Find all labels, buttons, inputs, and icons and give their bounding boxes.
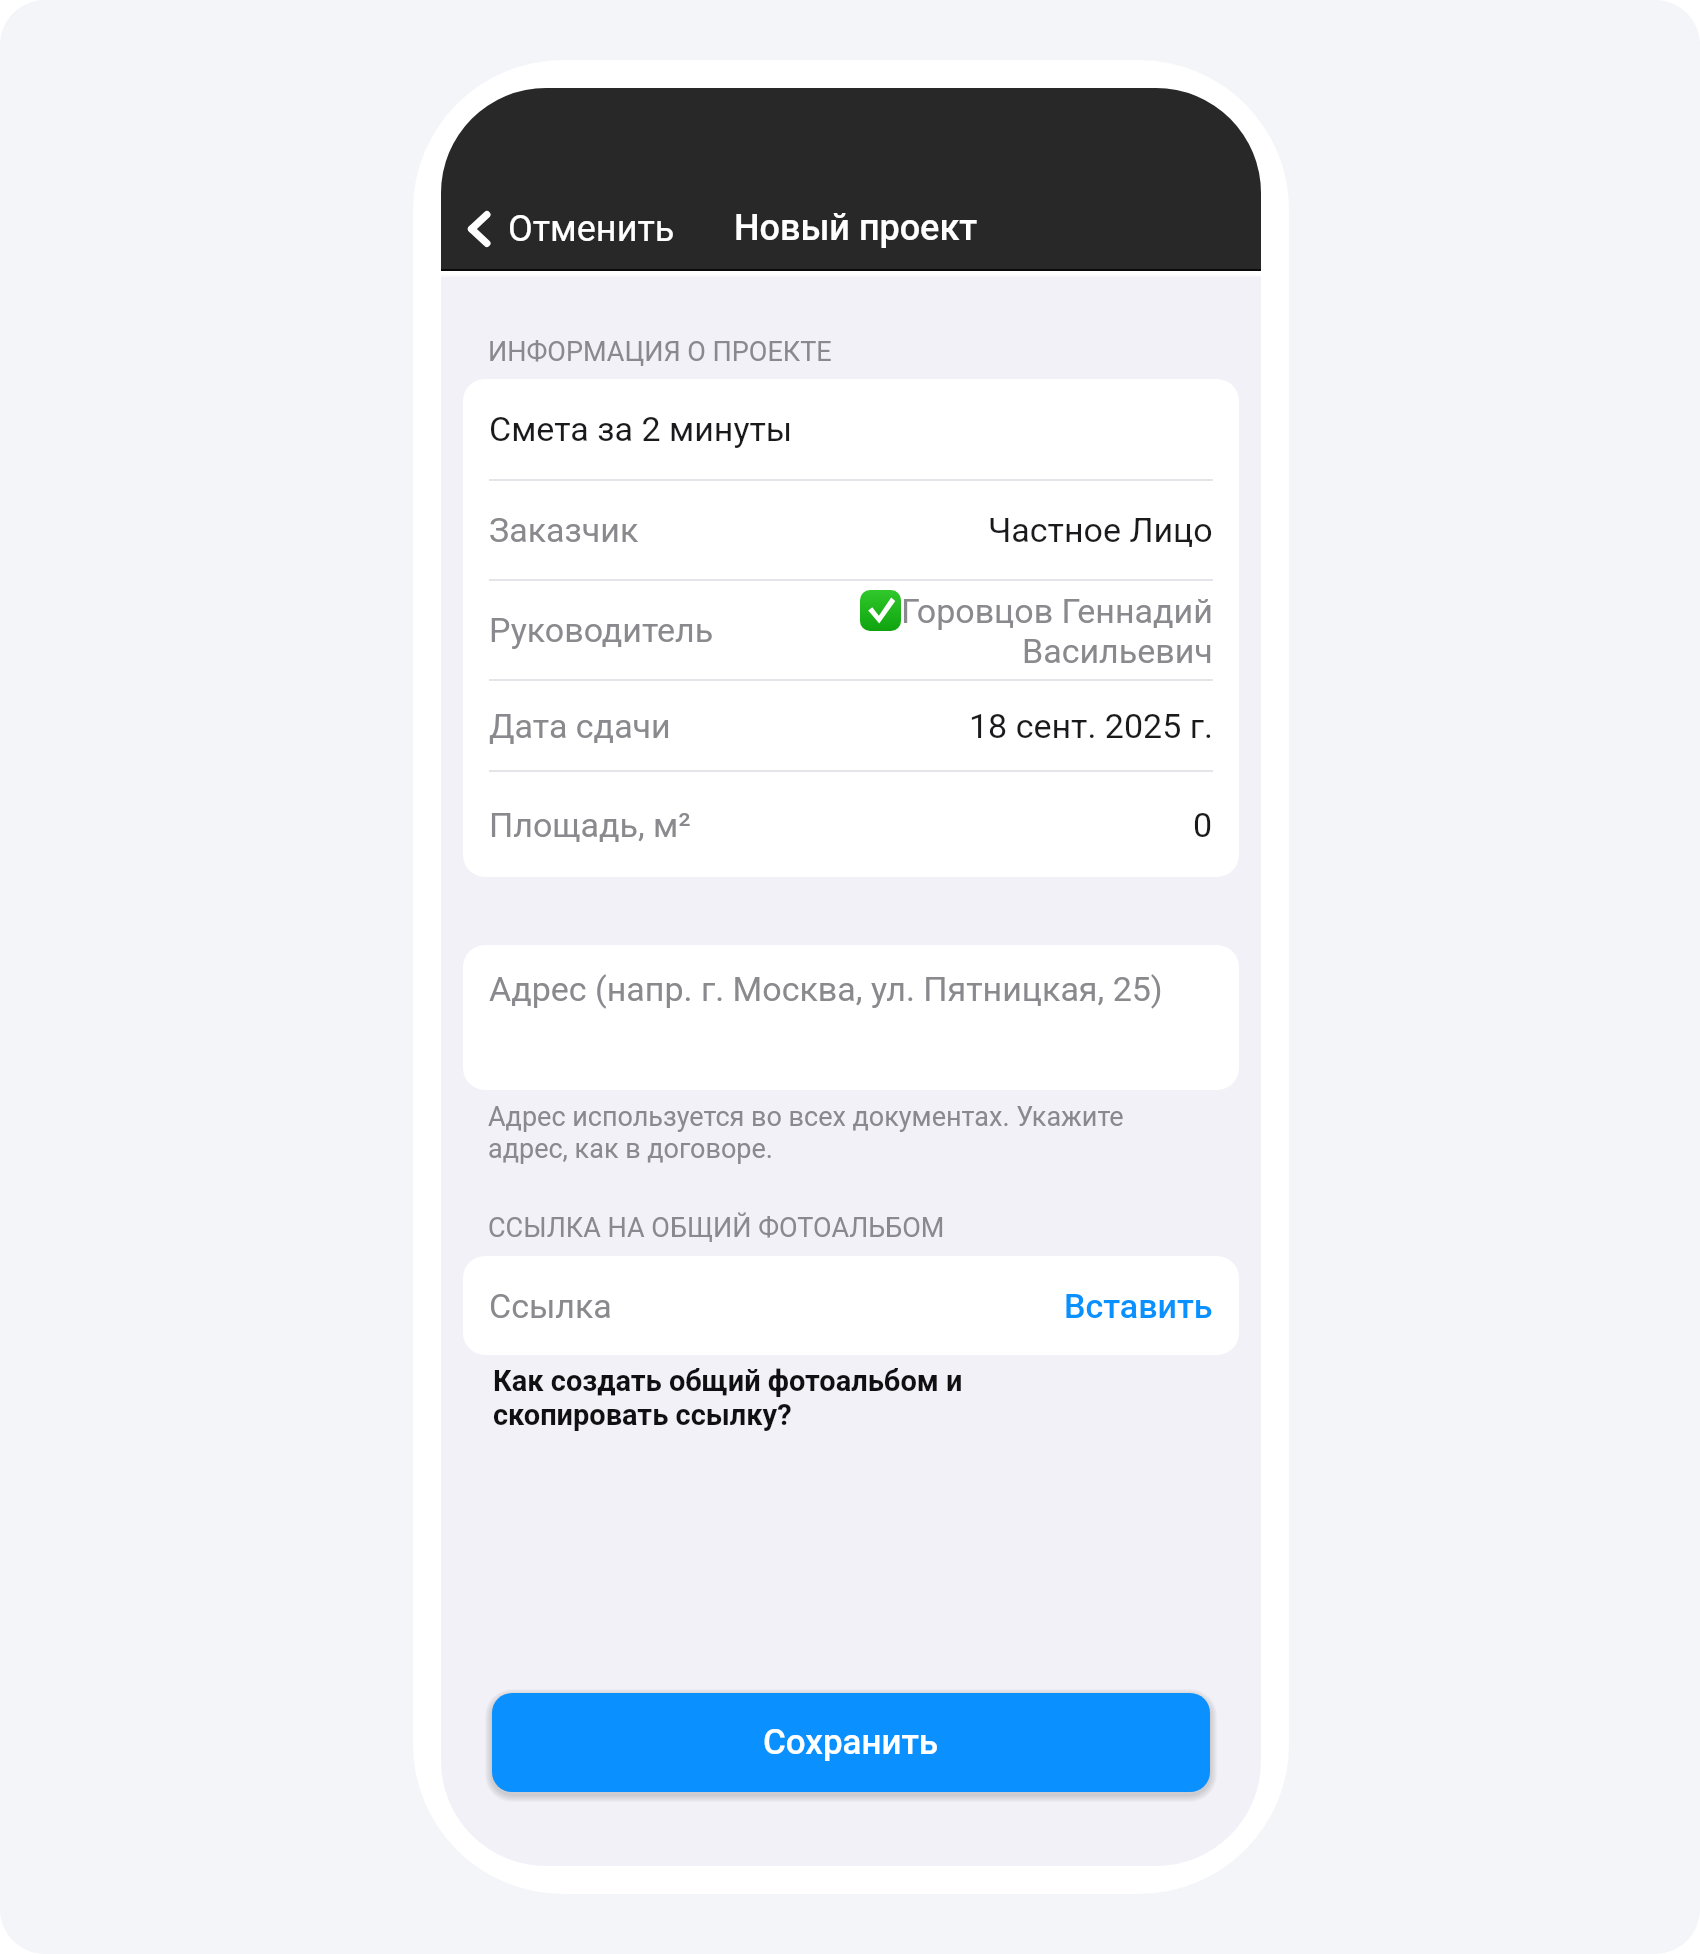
other: Подтверждено [860,590,901,631]
staticText: Адрес используется во всех документах. У… [488,1101,1124,1165]
staticText: Ссылка [489,1286,612,1326]
staticText: Руководитель [489,610,714,650]
button[interactable]: Заказчик [463,481,1239,579]
staticText: Васильевич [1022,631,1213,671]
button[interactable]: Адрес (напр. г. Москва, ул. Пятницкая, 2… [463,945,1239,1090]
button[interactable]: Как создать общий фотоальбом и скопирова… [493,1364,963,1432]
staticText: Заказчик [489,510,639,550]
button[interactable]: Дата сдачи [463,681,1239,770]
staticText: 18 сент. 2025 г. [969,706,1213,746]
staticText: Сохранить [763,1722,939,1763]
staticText: Дата сдачи [489,706,671,746]
button[interactable]: Руководитель [463,581,1239,679]
button[interactable]: Назад [468,200,685,258]
staticText: Горовцов Геннадий [901,591,1213,631]
button[interactable]: Вставить [1038,1272,1239,1340]
staticText: Вставить [1064,1286,1213,1326]
other: Назад [468,209,490,249]
staticText: ССЫЛКА НА ОБЩИЙ ФОТОАЛЬБОМ [488,1212,945,1244]
button[interactable]: Площадь, м² [463,772,1239,877]
button[interactable]: Смета за 2 минуты [463,379,1239,479]
button[interactable]: Сохранить [492,1693,1210,1792]
staticText: 0 [1193,805,1213,845]
staticText: Частное Лицо [988,510,1213,550]
staticText: Новый проект [734,207,978,249]
staticText: Смета за 2 минуты [489,409,793,449]
staticText: Адрес (напр. г. Москва, ул. Пятницкая, 2… [489,969,1163,1009]
staticText: Площадь, м² [489,805,691,845]
button[interactable]: Ссылка [463,1256,1239,1355]
staticText: ИНФОРМАЦИЯ О ПРОЕКТЕ [488,336,832,368]
staticText: Отменить [508,208,675,250]
